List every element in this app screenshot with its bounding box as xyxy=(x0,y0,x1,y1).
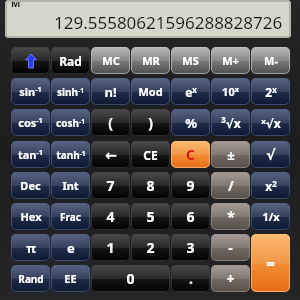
button[interactable]: * xyxy=(211,203,250,230)
staticText: - xyxy=(228,238,233,257)
button[interactable]: Rad xyxy=(51,47,90,74)
button[interactable]: e xyxy=(51,234,90,261)
button[interactable]: 2 xyxy=(131,234,170,261)
staticText: ³√x xyxy=(221,115,241,131)
staticText: MC xyxy=(102,53,120,68)
staticText: sin-1 xyxy=(19,84,42,99)
staticText: ˣ√x xyxy=(261,115,281,131)
button[interactable]: Mod xyxy=(131,78,170,105)
button[interactable]: ) xyxy=(131,109,170,136)
staticText: Int xyxy=(62,178,79,193)
staticText: ex xyxy=(185,84,197,100)
staticText: 1/x xyxy=(262,209,280,224)
button[interactable]: MC xyxy=(91,47,130,74)
staticText: π xyxy=(26,239,36,257)
button[interactable]: C xyxy=(171,141,210,168)
staticText: e xyxy=(67,239,75,257)
staticText: % xyxy=(185,114,197,132)
staticText: x2 xyxy=(265,178,277,194)
button[interactable]: 9 xyxy=(171,172,210,199)
button[interactable]: ˣ√x xyxy=(251,109,290,136)
staticText: 7 xyxy=(106,176,115,195)
button[interactable]: 1 xyxy=(91,234,130,261)
button[interactable]: MS xyxy=(171,47,210,74)
staticText: 1 xyxy=(106,238,115,257)
button[interactable]: M+ xyxy=(211,47,250,74)
button[interactable]: 3 xyxy=(171,234,210,261)
staticText: 5 xyxy=(146,207,155,226)
staticText: √ xyxy=(266,147,276,163)
button[interactable]: √ xyxy=(251,141,290,168)
button[interactable]: Hex xyxy=(11,203,50,230)
staticText: 2 xyxy=(146,238,155,257)
staticText: cos-1 xyxy=(18,115,43,130)
button[interactable]: / xyxy=(211,172,250,199)
button[interactable]: + xyxy=(211,265,250,292)
button[interactable]: EE xyxy=(51,265,90,292)
button[interactable]: cosh-1 xyxy=(51,109,90,136)
button[interactable]: 5 xyxy=(131,203,170,230)
staticText: 0 xyxy=(126,269,135,288)
staticText: Rad xyxy=(59,53,82,69)
button[interactable]: sin-1 xyxy=(11,78,50,105)
staticText: M- xyxy=(264,53,278,68)
button[interactable]: ³√x xyxy=(211,109,250,136)
button[interactable]: π xyxy=(11,234,50,261)
staticText: . xyxy=(189,269,193,288)
button[interactable]: Dec xyxy=(11,172,50,199)
button[interactable]: tanh-1 xyxy=(51,141,90,168)
staticText: CE xyxy=(143,147,158,163)
button[interactable]: n! xyxy=(91,78,130,105)
staticText: Frac xyxy=(60,210,81,224)
button[interactable]: M xyxy=(5,0,291,38)
button[interactable]: ex xyxy=(171,78,210,105)
button[interactable]: Equals xyxy=(251,234,290,292)
staticText: * xyxy=(227,207,235,226)
button[interactable]: 1/x xyxy=(251,203,290,230)
staticText: Dec xyxy=(20,178,41,193)
staticText: tanh-1 xyxy=(56,148,86,162)
button[interactable]: 6 xyxy=(171,203,210,230)
button[interactable]: 2x xyxy=(251,78,290,105)
staticText: n! xyxy=(104,83,117,101)
button[interactable]: CE xyxy=(131,141,170,168)
staticText: C xyxy=(186,145,195,164)
button[interactable]: Int xyxy=(51,172,90,199)
staticText: MR xyxy=(142,53,160,68)
staticText: tan-1 xyxy=(18,147,43,162)
button[interactable]: Backspace xyxy=(91,141,130,168)
button[interactable]: 7 xyxy=(91,172,130,199)
button[interactable]: 10x xyxy=(211,78,250,105)
staticText: M+ xyxy=(222,53,239,68)
staticText: Hex xyxy=(20,209,42,224)
button[interactable]: ± xyxy=(211,141,250,168)
button[interactable]: M- xyxy=(251,47,290,74)
staticText: 6 xyxy=(186,207,195,226)
button[interactable]: sinh-1 xyxy=(51,78,90,105)
staticText: / xyxy=(228,176,234,195)
button[interactable]: Frac xyxy=(51,203,90,230)
staticText: 3 xyxy=(186,238,195,257)
button[interactable]: 0 xyxy=(91,265,170,292)
staticText: ) xyxy=(148,113,153,132)
button[interactable]: - xyxy=(211,234,250,261)
staticText: 8 xyxy=(146,176,155,195)
button[interactable]: Shift xyxy=(11,47,50,74)
staticText: EE xyxy=(64,271,77,286)
button[interactable]: 4 xyxy=(91,203,130,230)
staticText: Rand xyxy=(18,272,44,286)
button[interactable]: cos-1 xyxy=(11,109,50,136)
staticText: 129.55580621596288828726 xyxy=(54,11,283,34)
button[interactable]: x2 xyxy=(251,172,290,199)
staticText: ± xyxy=(227,146,235,164)
button[interactable]: tan-1 xyxy=(11,141,50,168)
staticText: + xyxy=(226,269,235,288)
button[interactable]: % xyxy=(171,109,210,136)
button[interactable]: Rand xyxy=(11,265,50,292)
button[interactable]: . xyxy=(171,265,210,292)
staticText: 9 xyxy=(186,176,195,195)
button[interactable]: ( xyxy=(91,109,130,136)
staticText: 4 xyxy=(106,207,115,226)
button[interactable]: 8 xyxy=(131,172,170,199)
button[interactable]: MR xyxy=(131,47,170,74)
